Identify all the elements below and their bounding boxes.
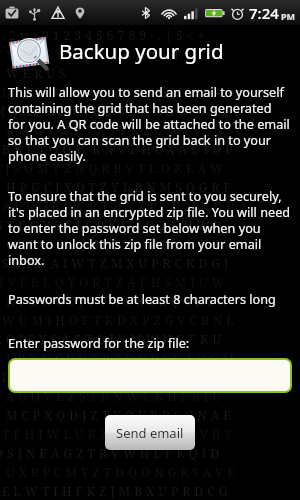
staticText: R M W G Z L T E S T R Z L M P S Z G	[6, 122, 300, 141]
staticText: Passwords must be at least 8 characters …	[8, 290, 292, 307]
staticText: 7:24	[249, 3, 279, 23]
staticText: K P D X G C J T V N L B E Z Q Y R S A	[6, 293, 300, 312]
staticText: S O F H A I W T Z M X U P R C K D G J	[2, 255, 300, 274]
staticText: L B X N C P D T R Z Q V Y S E A O G M	[6, 350, 300, 369]
staticText: , 2 v > 0 1 2 3 4 5 6 7 8 9 - , | 5 < +	[2, 27, 300, 46]
staticText: Send email	[116, 424, 184, 442]
staticText: M C P X Q D J Z T Y O V R B S G N A E	[6, 407, 300, 426]
staticText: Backup your grid	[59, 37, 224, 65]
staticText: O S J N E A G Z T R V W H L F K Q I D	[0, 445, 294, 464]
staticText: B K L T O Q W R N V E H C X A U I D P	[2, 141, 300, 160]
staticText: M Q A P G H C J K F Y D O B A V S I X Z …	[0, 103, 294, 122]
staticText: This will allow you to send an email to …	[8, 83, 292, 164]
staticText: PM	[281, 10, 296, 22]
staticText: I H W K U F J T Z M B N X D L P Q R C	[2, 369, 300, 388]
staticText: A E V O K J W R T H X Z P C U M N D B	[2, 198, 300, 217]
staticText: Enter password for the zip file:	[8, 334, 292, 351]
staticText: U X B P C M Y Z T D Q O N G R S A V E	[6, 464, 300, 483]
button[interactable]: Enter password for the zip file	[10, 360, 290, 391]
staticText: T F H I W L U K Z P M D X C Q R V B Y	[2, 426, 300, 445]
staticText: F J S G M Y Z N Q R B V T L O K E A W	[0, 160, 294, 179]
staticText: To ensure that the grid is sent to you s…	[8, 187, 292, 268]
staticText: C X P M D U J Z L K T G Y R Q N B E V	[6, 236, 300, 255]
staticText: G T L Q Y S F I E B K V A O Z N H W R	[0, 217, 294, 236]
staticText: Y A G O V E Z S T R N W L K H F B I U	[0, 388, 294, 407]
staticText: E L W T I H F K Z J M B X U P R D C G	[2, 483, 300, 500]
staticText: R Q J E Y S A Z T O I V M W H G F K U	[0, 331, 294, 350]
staticText: W U M I H O F T K D X P Z G V C B N L	[2, 312, 300, 331]
staticText: V Y C O A Y K S N F J D H N B P U I O	[0, 46, 294, 65]
button[interactable]: Send email	[105, 415, 195, 450]
staticText: H P U C I X D T Z Y L B N M S Q G R F	[6, 179, 300, 198]
staticText: D Z T S Q L X K O V Y R T H M W G U	[2, 84, 300, 103]
staticText: N V E B L Q Y O R T Z A F H S M I U W	[0, 274, 294, 293]
staticText: W E R U S	[6, 65, 300, 84]
